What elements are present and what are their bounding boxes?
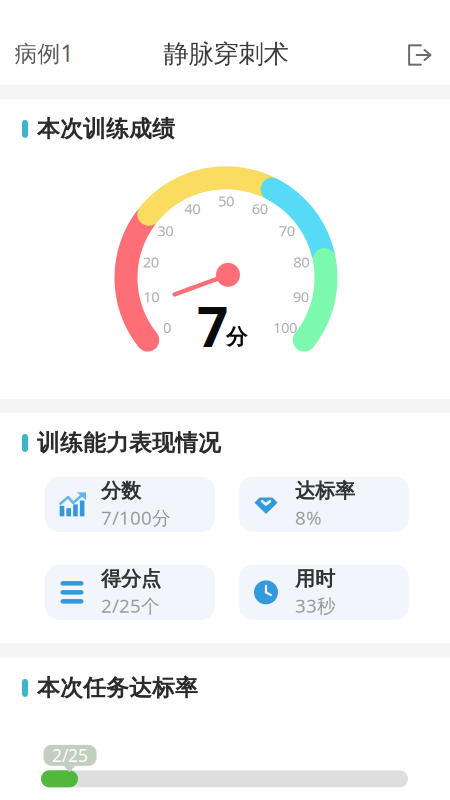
staticText: 用时: [295, 567, 335, 591]
staticText: 得分点: [101, 567, 161, 591]
button[interactable]: 退出: [393, 30, 444, 79]
staticText: 静脉穿刺术: [163, 38, 288, 69]
button[interactable]: 用时: [239, 565, 409, 620]
staticText: 分: [226, 324, 247, 350]
staticText: 30: [157, 221, 173, 240]
staticText: 10: [143, 287, 159, 306]
button[interactable]: 病例1: [0, 28, 74, 78]
staticText: 训练能力表现情况: [37, 429, 221, 457]
staticText: 100: [273, 318, 297, 337]
staticText: 8%: [295, 505, 322, 530]
staticText: 达标率: [295, 479, 355, 503]
button[interactable]: 分数: [45, 477, 215, 532]
staticText: 50: [218, 191, 234, 211]
staticText: 40: [184, 199, 200, 218]
staticText: 33秒: [295, 593, 336, 618]
staticText: 2/25: [52, 744, 88, 767]
staticText: 7/100分: [101, 505, 171, 530]
staticText: 70: [279, 221, 295, 240]
staticText: 0: [163, 318, 171, 337]
staticText: 2/25个: [101, 593, 160, 618]
staticText: 80: [293, 252, 309, 272]
button[interactable]: 达标率: [239, 477, 409, 532]
staticText: 本次训练成绩: [37, 115, 175, 143]
staticText: 本次任务达标率: [37, 674, 198, 702]
staticText: 60: [252, 199, 268, 218]
staticText: 20: [143, 252, 159, 272]
staticText: 7: [197, 289, 228, 362]
staticText: 病例1: [14, 38, 73, 68]
button[interactable]: 得分点: [45, 565, 215, 620]
staticText: 分数: [101, 479, 141, 503]
staticText: 90: [293, 287, 309, 306]
